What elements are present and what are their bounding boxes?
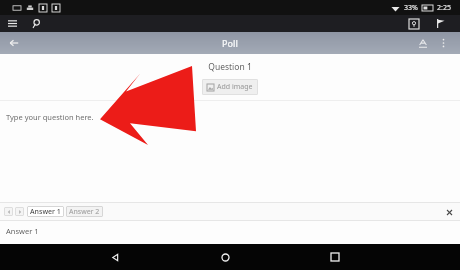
button[interactable]: Next answer [15, 207, 24, 216]
button[interactable]: Search [28, 15, 45, 32]
button[interactable]: Add image [202, 79, 258, 95]
button[interactable]: Previous answer [4, 207, 13, 216]
button[interactable]: Answer 1 [27, 206, 64, 217]
button[interactable]: Back [3, 32, 25, 54]
staticText: Answer 1 [30, 207, 61, 217]
button[interactable]: Recent apps [324, 246, 346, 268]
button[interactable]: Menu [4, 15, 21, 32]
button[interactable]: Close [442, 205, 456, 219]
button[interactable]: Flag [432, 15, 449, 32]
button[interactable]: Format text [412, 32, 434, 54]
button[interactable]: Home [214, 246, 236, 268]
staticText: Poll [222, 37, 238, 49]
staticText: 2:25 [437, 3, 451, 13]
button[interactable]: Type your question here. [6, 112, 94, 122]
staticText: Question 1 [0, 61, 460, 73]
button[interactable]: More options [432, 32, 454, 54]
staticText: Answer 2 [69, 207, 100, 217]
button[interactable]: Answer 2 [66, 206, 103, 217]
button[interactable]: Back [104, 246, 126, 268]
button[interactable]: Answer 1 [6, 226, 39, 236]
button[interactable]: Notifications [405, 15, 422, 32]
staticText: Add image [217, 82, 253, 92]
staticText: 33% [404, 3, 418, 13]
